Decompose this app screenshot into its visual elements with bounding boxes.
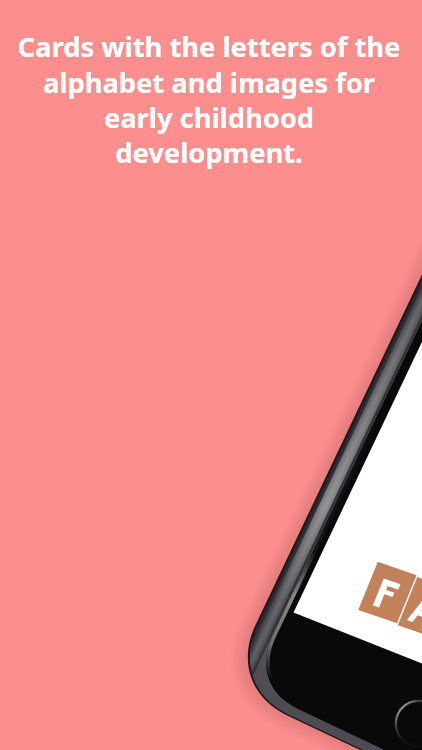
staticText: Cards with the letters of the alphabet a… [0, 28, 420, 171]
